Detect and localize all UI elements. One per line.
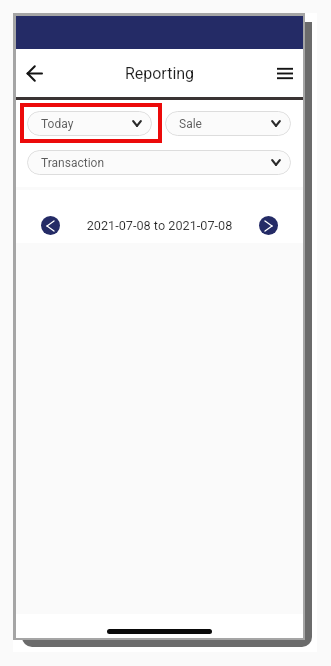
staticText: Sale bbox=[179, 117, 271, 131]
button[interactable]: Sale bbox=[165, 111, 291, 136]
staticText: 2021-07-08 to 2021-07-08 bbox=[60, 218, 259, 233]
staticText: Transaction bbox=[41, 156, 271, 170]
button[interactable]: Transaction bbox=[27, 150, 291, 175]
button[interactable]: Next period bbox=[259, 216, 278, 235]
staticText: Today bbox=[41, 117, 132, 131]
button[interactable]: Today bbox=[27, 111, 152, 136]
staticText: Reporting bbox=[53, 64, 266, 83]
button[interactable]: Menu bbox=[266, 49, 303, 97]
button[interactable]: Back bbox=[16, 49, 53, 97]
button[interactable]: Previous period bbox=[41, 216, 60, 235]
